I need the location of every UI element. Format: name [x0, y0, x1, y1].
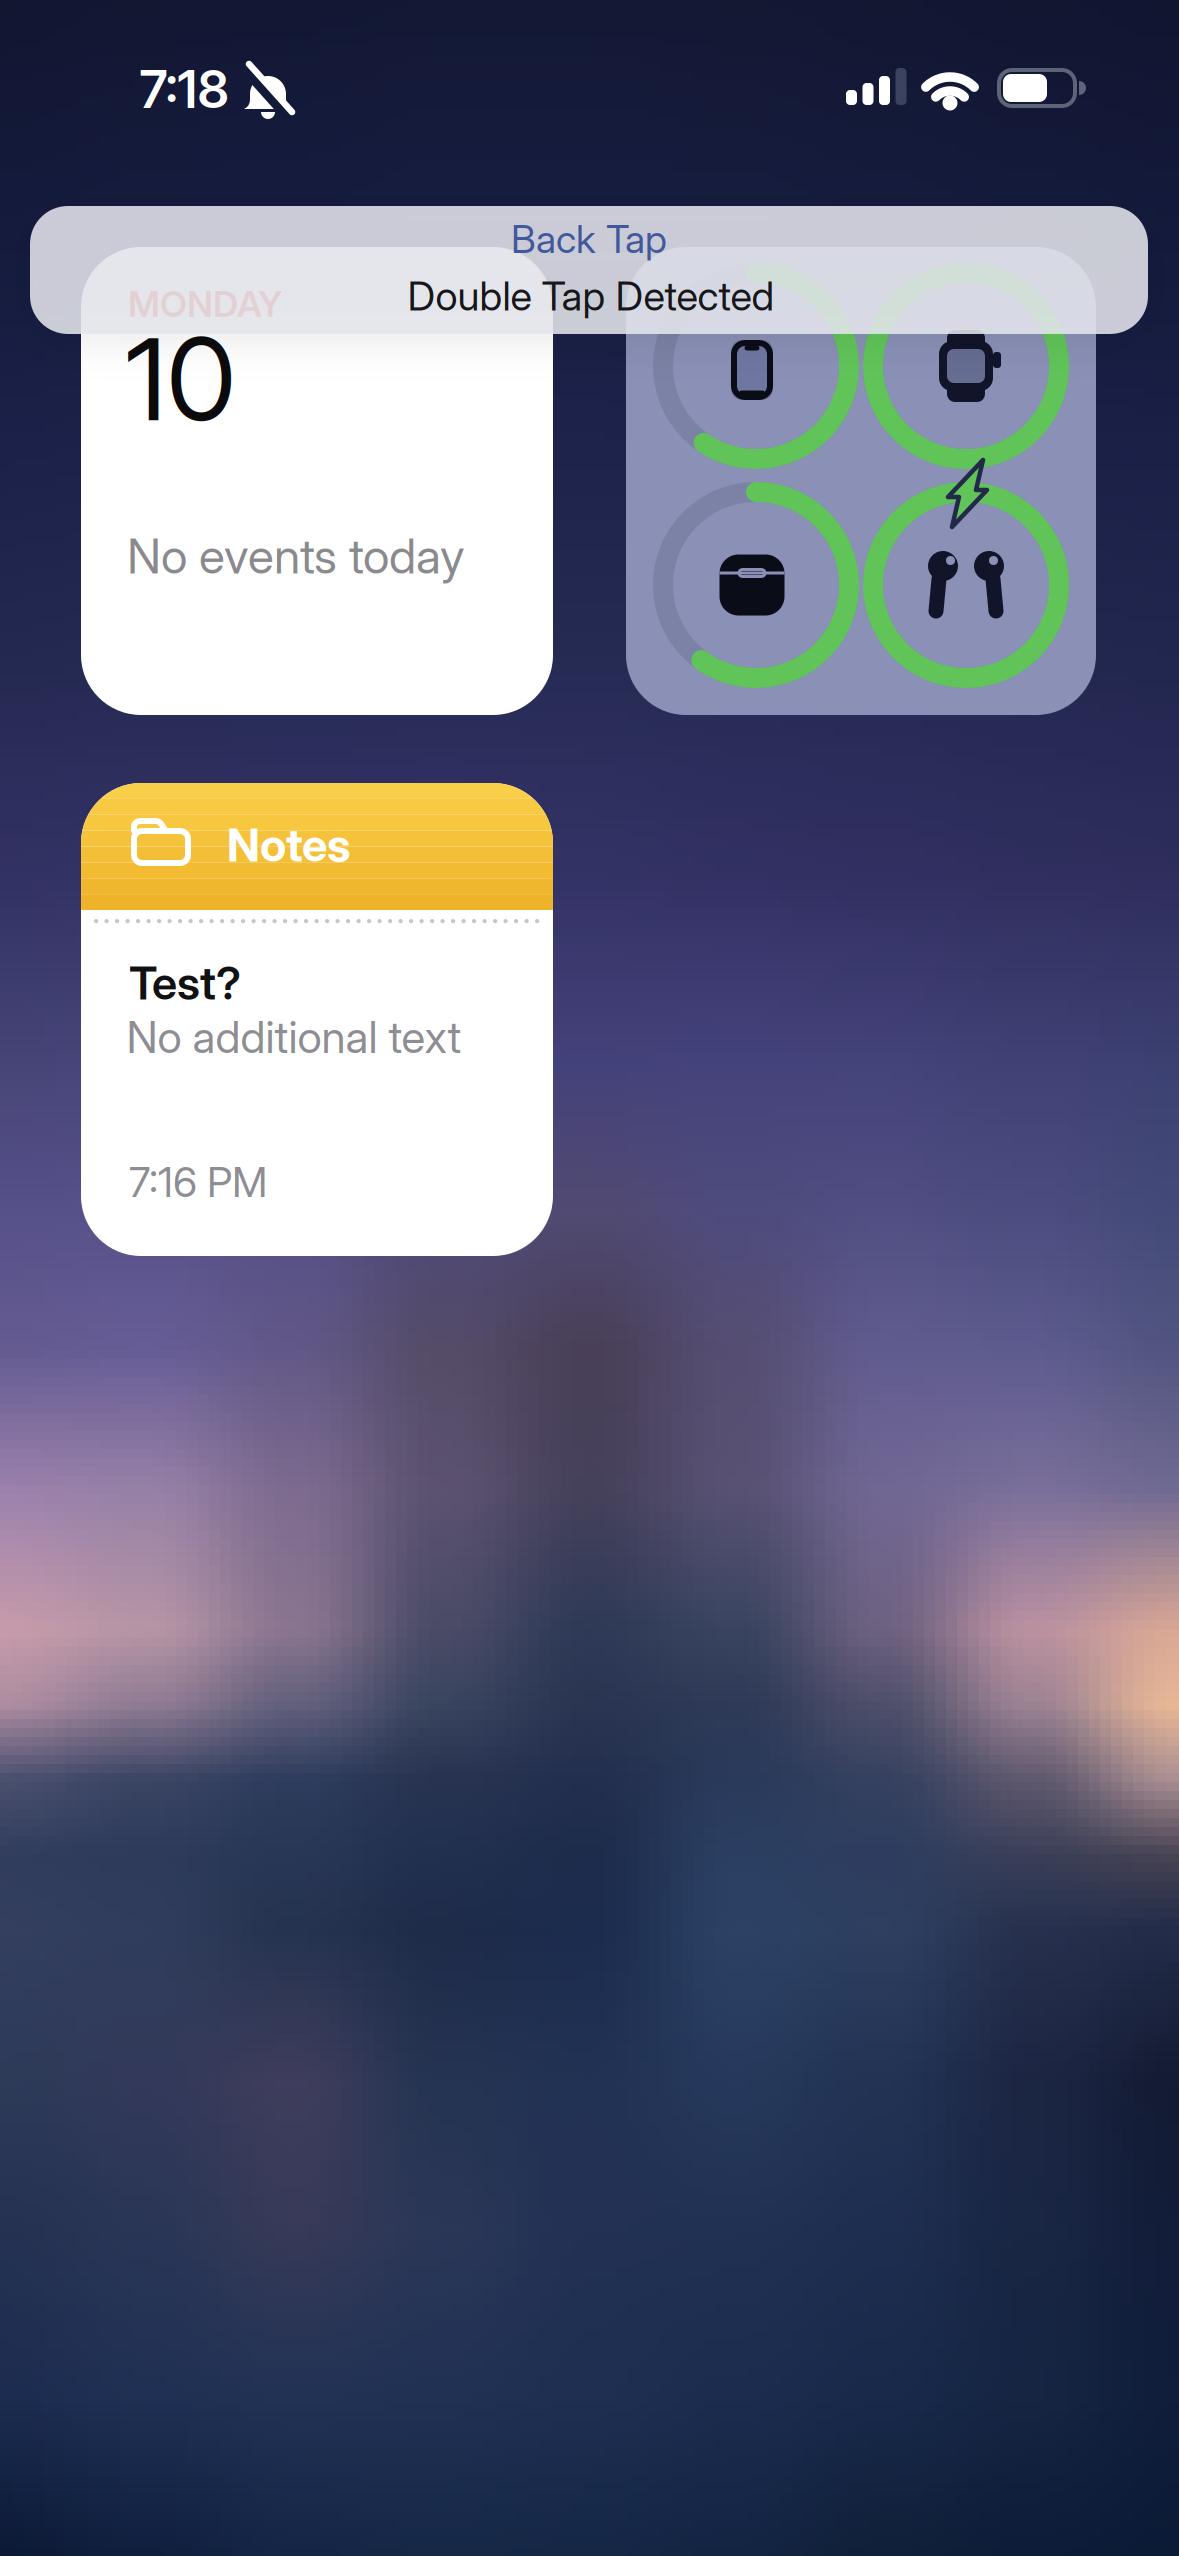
staticText: Test?: [129, 956, 241, 1010]
button[interactable]: Back Tap notification: [30, 206, 1148, 334]
staticText: MONDAY: [128, 283, 282, 325]
staticText: No additional text: [126, 1011, 461, 1063]
staticText: Back Tap: [511, 216, 667, 262]
staticText: 7:16 PM: [129, 1158, 267, 1206]
staticText: No events today: [127, 528, 465, 584]
button[interactable]: Calendar: [81, 247, 553, 715]
staticText: 10: [125, 312, 236, 446]
staticText: Notes: [227, 818, 351, 872]
staticText: Double Tap Detected: [407, 272, 774, 320]
button[interactable]: Notes: [81, 783, 553, 1256]
button[interactable]: Batteries: [626, 247, 1096, 715]
staticText: 7:18: [139, 58, 228, 120]
